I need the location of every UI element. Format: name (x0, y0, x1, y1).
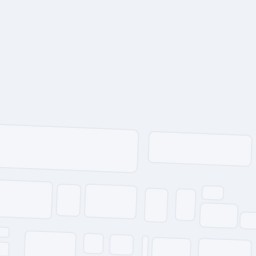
button[interactable]: Tile 2 (57, 184, 80, 216)
button[interactable]: Tile 6 (202, 186, 223, 200)
button[interactable]: Tile 15 (152, 238, 191, 256)
button[interactable]: Tile 14 (142, 236, 148, 256)
button[interactable]: Tile 16 (198, 239, 251, 256)
button[interactable]: Tile 10 (0, 242, 9, 256)
button[interactable]: Tile 8 (240, 212, 256, 229)
button[interactable]: Tile 9 (0, 227, 9, 237)
button[interactable]: Tile 4 (145, 188, 167, 222)
button[interactable]: Tile 13 (110, 235, 133, 255)
button[interactable]: Tile 7 (200, 203, 238, 228)
button[interactable]: Tile 12 (84, 234, 103, 254)
